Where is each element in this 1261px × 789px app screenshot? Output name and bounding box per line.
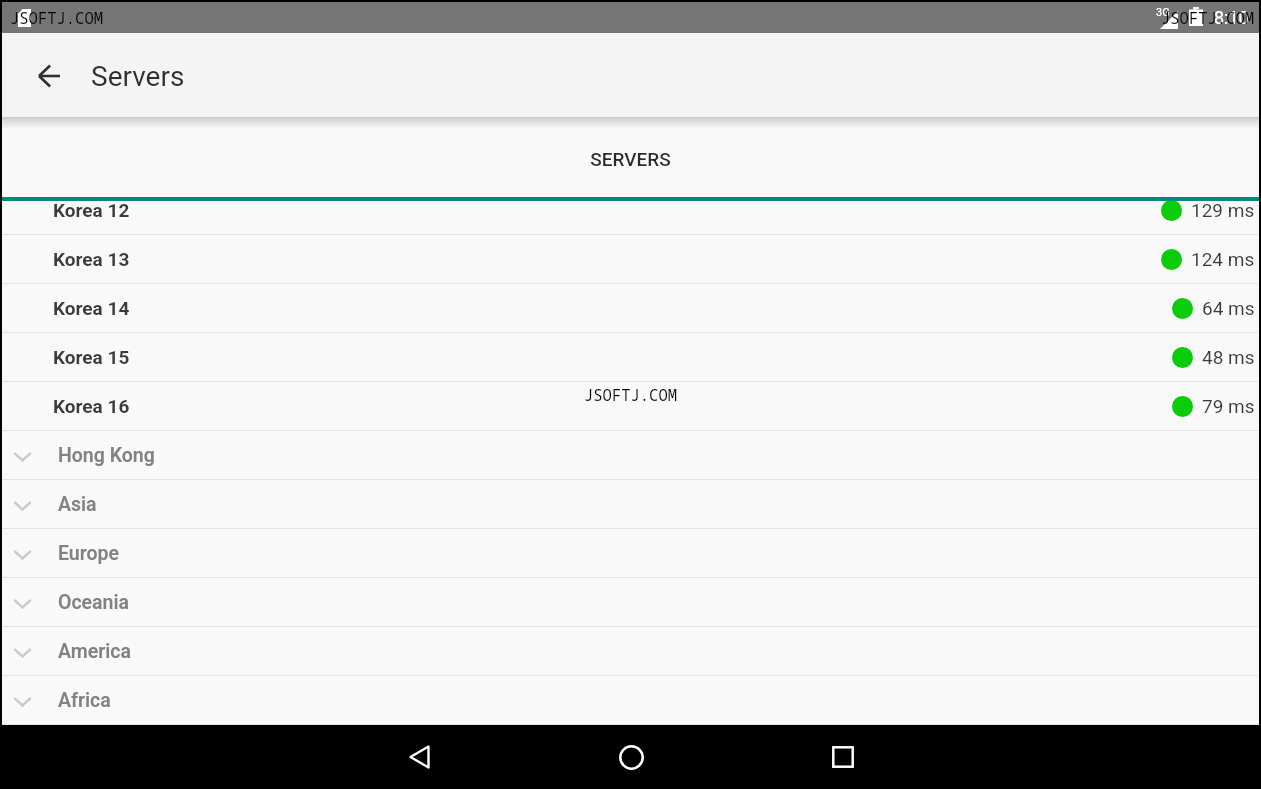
button[interactable]: America <box>2 627 1259 676</box>
staticText: 48 ms <box>1202 346 1255 368</box>
staticText: 3G <box>1156 6 1170 19</box>
staticText: 8:10 <box>1214 7 1249 28</box>
button[interactable]: Africa <box>2 676 1259 725</box>
staticText: Hong Kong <box>58 444 155 467</box>
staticText: JSOFTJ.COM <box>584 384 678 405</box>
staticText: America <box>58 640 131 663</box>
button[interactable]: Asia <box>2 480 1259 529</box>
staticText: Oceania <box>58 591 130 614</box>
button[interactable]: Recents <box>819 733 867 781</box>
staticText: 129 ms <box>1191 201 1255 221</box>
staticText: 79 ms <box>1202 395 1255 417</box>
staticText: Europe <box>58 542 119 565</box>
staticText: 124 ms <box>1191 248 1255 270</box>
button[interactable]: Hong Kong <box>2 431 1259 480</box>
button[interactable]: Back <box>23 49 75 101</box>
staticText: JSOFTJ.COM <box>10 7 104 28</box>
button[interactable]: Korea 14 <box>2 284 1259 333</box>
staticText: Asia <box>58 493 97 516</box>
button[interactable]: Korea 15 <box>2 333 1259 382</box>
button[interactable]: Korea 12 <box>2 201 1259 235</box>
button[interactable]: Home <box>607 733 655 781</box>
staticText: Korea 16 <box>53 395 130 417</box>
staticText: SERVERS <box>590 148 671 170</box>
staticText: 64 ms <box>1202 297 1255 319</box>
staticText: Africa <box>58 689 111 712</box>
button[interactable]: Europe <box>2 529 1259 578</box>
staticText: Korea 12 <box>53 201 130 221</box>
staticText: Servers <box>91 60 185 93</box>
staticText: Korea 15 <box>53 346 130 368</box>
button[interactable]: SERVERS <box>2 117 1259 197</box>
staticText: Korea 13 <box>53 248 130 270</box>
button[interactable]: Back <box>395 733 443 781</box>
button[interactable]: Korea 16 <box>2 382 1259 431</box>
button[interactable]: Korea 13 <box>2 235 1259 284</box>
button[interactable]: Oceania <box>2 578 1259 627</box>
staticText: Korea 14 <box>53 297 130 319</box>
staticText: JSOFTJ.COM <box>1161 7 1255 28</box>
